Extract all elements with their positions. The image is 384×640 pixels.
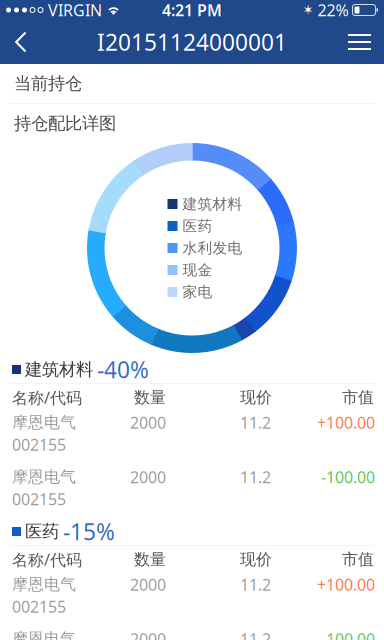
staticText: 002155 (12, 596, 66, 617)
staticText: 建筑材料 (25, 359, 93, 380)
button[interactable]: 摩恩电气 (0, 573, 384, 627)
staticText: 2000 (130, 628, 166, 640)
staticText: 数量 (134, 550, 166, 569)
staticText: 11.2 (240, 574, 271, 595)
staticText: 医药 (182, 217, 212, 235)
staticText: 11.2 (240, 412, 271, 433)
staticText: +100.00 (317, 412, 375, 433)
staticText: 摩恩电气 (12, 575, 76, 594)
staticText: 家电 (182, 283, 212, 301)
staticText: VIRGIN (48, 0, 102, 21)
staticText: I20151124000001 (97, 27, 287, 57)
staticText: 22% (317, 0, 348, 21)
staticText: 2000 (130, 574, 166, 595)
staticText: -100.00 (321, 466, 375, 488)
staticText: 002155 (12, 434, 66, 455)
button[interactable]: Menu (335, 20, 384, 64)
staticText: 市值 (342, 550, 374, 569)
staticText: 11.2 (240, 466, 271, 488)
staticText: 11.2 (240, 628, 271, 640)
button[interactable]: 摩恩电气 (0, 411, 384, 465)
staticText: 摩恩电气 (12, 467, 76, 487)
staticText: 当前持仓 (14, 73, 82, 94)
staticText: -15% (63, 516, 115, 546)
staticText: +100.00 (317, 574, 375, 595)
staticText: 持仓配比详图 (14, 113, 116, 134)
staticText: -100.00 (321, 628, 375, 640)
staticText: 名称/代码 (12, 387, 82, 408)
staticText: 4:21 PM (162, 0, 222, 21)
staticText: 摩恩电气 (12, 629, 76, 640)
staticText: 现价 (240, 550, 272, 569)
staticText: 医药 (25, 521, 59, 542)
staticText: 2000 (130, 412, 166, 433)
button[interactable]: Back (0, 20, 40, 64)
staticText: 建筑材料 (182, 195, 242, 213)
staticText: 现金 (182, 261, 212, 279)
staticText: 现价 (240, 388, 272, 407)
staticText: ✶ (302, 2, 313, 17)
staticText: 市值 (342, 388, 374, 407)
staticText: 数量 (134, 388, 166, 407)
staticText: 002155 (12, 488, 66, 510)
staticText: 摩恩电气 (12, 413, 76, 432)
staticText: -40% (97, 354, 149, 384)
staticText: 2000 (130, 466, 166, 488)
button[interactable]: 摩恩电气 (0, 627, 384, 640)
staticText: 水利发电 (182, 239, 242, 257)
button[interactable]: 摩恩电气 (0, 465, 384, 515)
staticText: 名称/代码 (12, 549, 82, 570)
